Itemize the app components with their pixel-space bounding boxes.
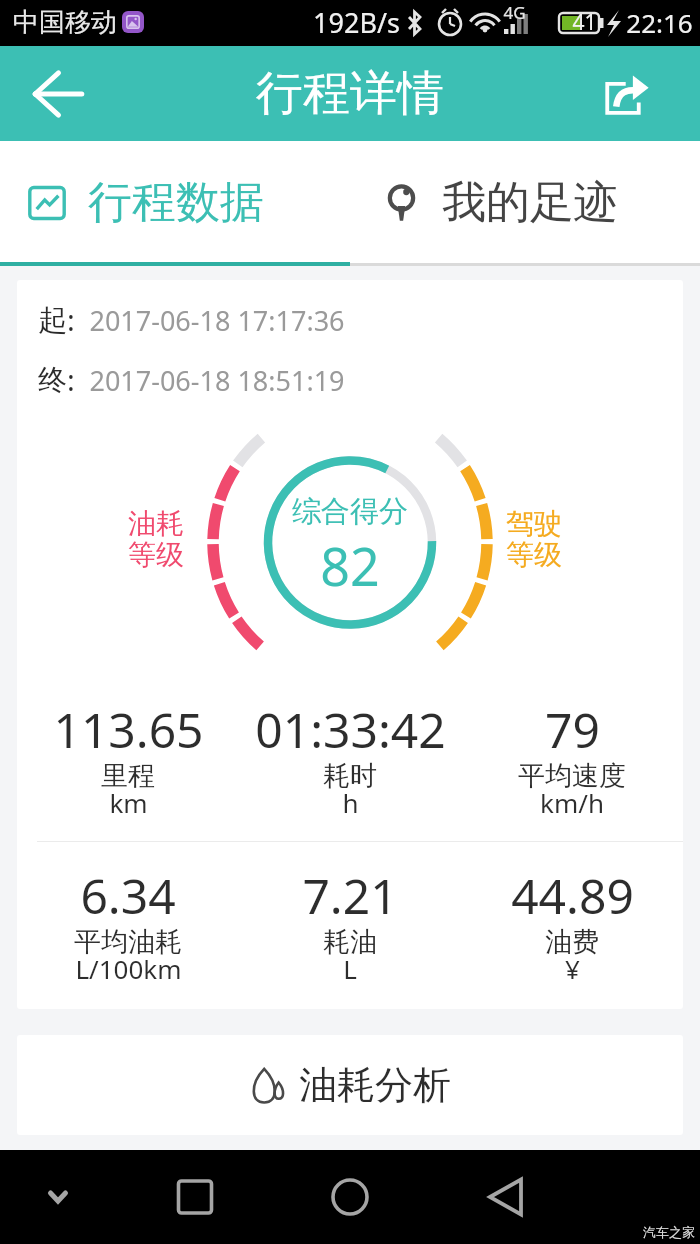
staticText: 6.34	[80, 863, 176, 928]
staticText: 行程数据	[88, 175, 264, 230]
staticText: 耗油	[323, 925, 377, 959]
button[interactable]: Hide keyboard	[18, 1150, 98, 1244]
staticText: ¥	[565, 951, 580, 986]
staticText: 44.89	[511, 863, 634, 928]
staticText: 油耗分析	[299, 1061, 451, 1109]
staticText: L/100km	[75, 951, 182, 986]
staticText: 等级	[506, 537, 562, 572]
staticText: 油费	[545, 925, 599, 959]
staticText: 01:33:42	[255, 697, 446, 762]
staticText: :	[67, 300, 75, 339]
button[interactable]: Home	[310, 1150, 390, 1244]
staticText: 2017-06-18 17:17:36	[89, 302, 345, 339]
staticText: 中国移动	[13, 6, 117, 39]
button[interactable]: Back	[18, 54, 98, 134]
button[interactable]: Back	[466, 1150, 546, 1244]
staticText: 综合得分	[292, 493, 408, 530]
staticText: 192B/s	[313, 4, 400, 41]
staticText: h	[342, 785, 359, 820]
staticText: L	[343, 951, 357, 986]
staticText: 里程	[101, 759, 155, 793]
staticText: 4G	[503, 1, 526, 24]
staticText: 平均油耗	[74, 925, 182, 959]
staticText: 41	[572, 8, 597, 37]
staticText: 汽车之家	[643, 1224, 695, 1240]
button[interactable]: Share	[591, 58, 663, 130]
staticText: 82	[320, 530, 380, 601]
staticText: 22:16	[626, 5, 693, 40]
staticText: 我的足迹	[442, 175, 618, 230]
staticText: 79	[545, 697, 600, 762]
button[interactable]: 行程数据	[0, 141, 350, 266]
staticText: 耗时	[323, 759, 377, 793]
button[interactable]: 我的足迹	[350, 141, 700, 266]
staticText: 油耗	[128, 506, 184, 541]
staticText: 7.21	[302, 863, 398, 928]
staticText: km/h	[540, 785, 604, 820]
staticText: 113.65	[53, 697, 204, 762]
button[interactable]: Recents	[155, 1150, 235, 1244]
staticText: 行程详情	[256, 64, 444, 123]
staticText: km	[109, 785, 148, 820]
staticText: 平均速度	[518, 759, 626, 793]
button[interactable]: 油耗分析	[17, 1035, 683, 1135]
staticText: 终	[38, 362, 67, 399]
staticText: 驾驶	[506, 506, 562, 541]
staticText: :	[67, 360, 75, 399]
staticText: 2017-06-18 18:51:19	[89, 362, 345, 399]
staticText: 起	[38, 302, 67, 339]
staticText: 等级	[128, 537, 184, 572]
